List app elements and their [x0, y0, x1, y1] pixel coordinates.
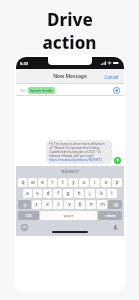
- staticText: d: [46, 190, 50, 197]
- staticText: m: [100, 201, 105, 208]
- staticText: Cancel: [104, 74, 119, 80]
- button[interactable]: s: [33, 189, 42, 198]
- staticText: a: [26, 190, 29, 197]
- button[interactable]: Send: [114, 157, 121, 164]
- staticText: o: [104, 179, 108, 186]
- button[interactable]: Shift: [18, 200, 31, 209]
- button[interactable]: m: [97, 200, 107, 209]
- button[interactable]: c: [53, 200, 63, 209]
- button[interactable]: g: [63, 189, 73, 198]
- button[interactable]: j: [85, 189, 95, 198]
- button[interactable]: e: [38, 178, 47, 187]
- staticText: q: [21, 179, 25, 186]
- button[interactable]: Dictation: [112, 224, 119, 231]
- button[interactable]: i: [90, 178, 100, 187]
- staticText: e: [41, 179, 44, 186]
- staticText: p: [115, 179, 119, 186]
- button[interactable]: 123: [18, 211, 39, 220]
- staticText: c: [57, 201, 60, 208]
- staticText: action: [42, 31, 97, 54]
- button[interactable]: a: [23, 189, 32, 198]
- button[interactable]: d: [43, 189, 52, 198]
- button[interactable]: q: [18, 178, 27, 187]
- staticText: l: [111, 190, 113, 197]
- staticText: Sarah Smith: [30, 88, 53, 93]
- button[interactable]: v: [64, 200, 74, 209]
- staticText: New Message: [53, 73, 87, 80]
- button[interactable]: To:: [16, 84, 124, 96]
- staticText: https://reval.bot/petitions/RQHMTZ: [49, 158, 102, 162]
- staticText: Drive: [47, 8, 93, 31]
- staticText: k: [100, 190, 103, 197]
- button[interactable]: k: [96, 189, 106, 198]
- button[interactable]: Cancel: [99, 70, 124, 84]
- staticText: s: [36, 190, 39, 197]
- button[interactable]: Emoji: [21, 224, 28, 231]
- staticText: of "Please Co-Sponsor the Ending: [49, 146, 100, 150]
- staticText: Qualified Immunity Act of 2021" to: [49, 150, 101, 154]
- button[interactable]: t: [58, 178, 67, 187]
- button[interactable]: h: [74, 189, 84, 198]
- button[interactable]: Delete: [108, 200, 122, 209]
- button[interactable]: b: [75, 200, 85, 209]
- button[interactable]: o: [101, 178, 111, 187]
- staticText: f: [57, 190, 59, 197]
- button[interactable]: y: [68, 178, 78, 187]
- button[interactable]: n: [86, 200, 96, 209]
- button[interactable]: Add contact: [113, 87, 120, 94]
- staticText: space: [63, 213, 74, 218]
- button[interactable]: r: [48, 178, 57, 187]
- staticText: To:: [20, 88, 26, 93]
- button[interactable]: space: [40, 211, 97, 220]
- staticText: 5:33: [20, 61, 28, 66]
- staticText: elected officials, will you help?: [49, 154, 94, 158]
- staticText: "RQHMTZ": [60, 169, 80, 174]
- button[interactable]: w: [28, 178, 37, 187]
- button[interactable]: u: [79, 178, 89, 187]
- staticText: w: [31, 179, 35, 186]
- staticText: y: [72, 179, 75, 186]
- staticText: n: [89, 201, 93, 208]
- staticText: i: [94, 179, 96, 186]
- staticText: Hi, I'm trying to drive more deliveries: [49, 142, 105, 146]
- staticText: h: [77, 190, 81, 197]
- staticText: z: [35, 201, 38, 208]
- staticText: 123: [25, 213, 32, 218]
- staticText: v: [68, 201, 71, 208]
- button[interactable]: x: [42, 200, 52, 209]
- staticText: return: [105, 213, 116, 218]
- button[interactable]: f: [53, 189, 62, 198]
- button[interactable]: p: [112, 178, 122, 187]
- staticText: x: [46, 201, 49, 208]
- button[interactable]: return: [98, 211, 122, 220]
- button[interactable]: l: [107, 189, 117, 198]
- staticText: r: [51, 179, 54, 186]
- staticText: u: [82, 179, 86, 186]
- staticText: b: [78, 201, 82, 208]
- button[interactable]: Hi, I'm trying to drive more deliveries: [46, 140, 112, 164]
- button[interactable]: z: [32, 200, 41, 209]
- staticText: g: [66, 190, 70, 197]
- staticText: t: [62, 179, 64, 186]
- staticText: j: [89, 190, 91, 197]
